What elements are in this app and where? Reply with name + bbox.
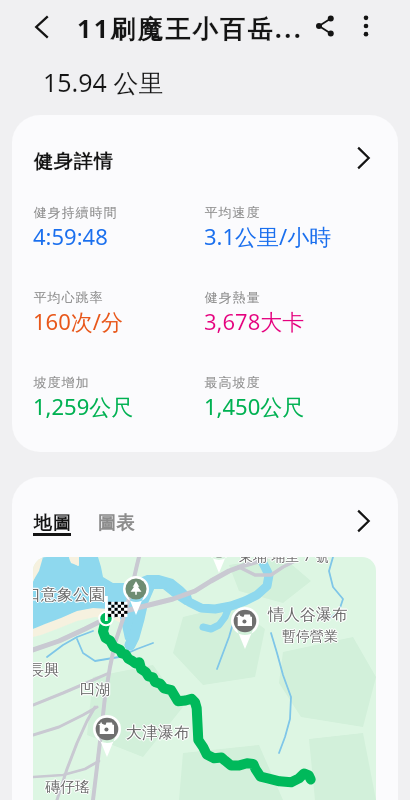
staticText: 3.1公里/小時	[204, 221, 332, 251]
staticText: 1,259公尺	[33, 391, 134, 421]
staticText: 15.94 公里	[43, 65, 164, 99]
button[interactable]: 平均心跳率	[33, 289, 208, 337]
staticText: 東埔-埔里 7 號	[239, 557, 329, 566]
staticText: 東埔-埔里 7 號	[240, 557, 330, 565]
staticText: 長興	[33, 661, 60, 680]
button[interactable]: 健身持續時間	[33, 204, 208, 252]
staticText: 口意象公園	[33, 585, 106, 605]
staticText: 長興	[33, 660, 59, 679]
staticText: 1,450公尺	[204, 391, 305, 421]
button[interactable]: 健身熱量	[204, 289, 379, 337]
staticText: 口意象公園	[33, 586, 105, 606]
staticText: 情人谷瀑布	[268, 605, 348, 625]
staticText: 暫停營業	[283, 628, 339, 646]
staticText: 11刷魔王小百岳...	[77, 11, 304, 45]
staticText: 情人谷瀑布	[268, 604, 348, 624]
staticText: 磚仔瑤	[44, 778, 89, 797]
staticText: 暫停營業	[282, 628, 338, 646]
staticText: 東埔-埔里 7 號	[239, 557, 329, 564]
staticText: 情人谷瀑布	[269, 605, 349, 625]
staticText: 暫停營業	[282, 629, 338, 647]
staticText: 凹湖	[79, 681, 109, 700]
staticText: 口意象公園	[33, 585, 104, 605]
staticText: 情人谷瀑布	[267, 605, 347, 625]
staticText: 圖表	[97, 512, 135, 535]
staticText: 平均速度	[204, 204, 260, 220]
staticText: 長興	[33, 661, 58, 680]
staticText: 暫停營業	[282, 627, 338, 645]
staticText: 磚仔瑤	[45, 779, 90, 798]
staticText: 大津瀑布	[127, 723, 191, 743]
button[interactable]: 口意象公園	[33, 557, 376, 800]
staticText: 東埔-埔里 7 號	[239, 557, 329, 565]
button[interactable]: 健身詳情	[12, 115, 398, 452]
staticText: 最高坡度	[204, 374, 260, 390]
staticText: 情人谷瀑布	[268, 606, 348, 626]
staticText: 磚仔瑤	[46, 778, 91, 797]
staticText: 大津瀑布	[126, 724, 190, 744]
staticText: 坡度增加	[33, 374, 89, 390]
staticText: 凹湖	[80, 680, 110, 699]
staticText: 地圖	[33, 512, 71, 535]
button[interactable]: 圖表	[97, 512, 135, 535]
button[interactable]: Back	[23, 8, 61, 46]
staticText: 口意象公園	[33, 584, 105, 604]
staticText: 東埔-埔里 7 號	[238, 557, 328, 565]
button[interactable]: 平均速度	[204, 204, 379, 252]
button[interactable]: Workout details	[349, 144, 377, 172]
button[interactable]: 地圖	[33, 512, 71, 535]
staticText: 健身熱量	[204, 289, 260, 305]
staticText: 平均心跳率	[33, 289, 103, 305]
button[interactable]: 坡度增加	[33, 374, 208, 422]
staticText: 凹湖	[81, 681, 111, 700]
staticText: 口意象公園	[33, 585, 105, 605]
staticText: 磚仔瑤	[45, 778, 90, 797]
button[interactable]: Share	[306, 7, 344, 45]
staticText: 凹湖	[80, 681, 110, 700]
staticText: 3,678大卡	[204, 306, 305, 336]
staticText: 大津瀑布	[126, 722, 190, 742]
staticText: 磚仔瑤	[45, 777, 90, 796]
button[interactable]: Expand map	[349, 507, 377, 535]
staticText: 健身詳情	[33, 150, 113, 174]
button[interactable]: More options	[347, 7, 385, 45]
staticText: 凹湖	[80, 682, 110, 701]
staticText: 大津瀑布	[125, 723, 189, 743]
staticText: 160次/分	[33, 306, 123, 336]
staticText: 健身持續時間	[33, 204, 117, 220]
staticText: 長興	[33, 661, 59, 680]
staticText: 長興	[33, 662, 59, 681]
staticText: 暫停營業	[281, 628, 337, 646]
button[interactable]: 最高坡度	[204, 374, 379, 422]
staticText: 大津瀑布	[126, 723, 190, 743]
staticText: 4:59:48	[33, 221, 108, 251]
